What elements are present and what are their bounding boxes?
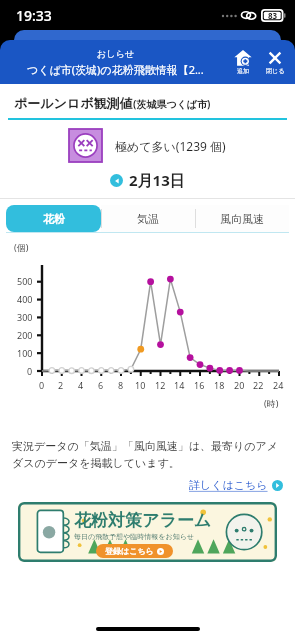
button[interactable]: 詳しくはこちら bbox=[12, 478, 283, 492]
staticText: 100 bbox=[17, 347, 33, 359]
staticText: おしらせ bbox=[97, 48, 134, 59]
staticText: (時) bbox=[264, 397, 279, 409]
staticText: 8 bbox=[118, 379, 124, 391]
staticText: つくば市(茨城)の花粉飛散情報【2... bbox=[27, 62, 204, 77]
staticText: 12 bbox=[155, 379, 166, 391]
staticText: 400 bbox=[17, 293, 33, 305]
staticText: 19:33 bbox=[16, 6, 52, 25]
button[interactable]: 花粉対策アラーム 登録はこちら bbox=[18, 502, 277, 562]
staticText: 花粉 bbox=[43, 212, 65, 226]
button[interactable]: 閉じる bbox=[259, 49, 291, 75]
button[interactable]: 追加 bbox=[227, 49, 259, 75]
staticText: 登録はこちら bbox=[105, 546, 154, 556]
staticText: 14 bbox=[174, 379, 185, 391]
staticText: 10 bbox=[135, 379, 146, 391]
button[interactable]: 気温 bbox=[101, 205, 195, 232]
staticText: 200 bbox=[17, 329, 33, 341]
staticText: 実況データの「気温」「風向風速」は、最寄りのアメダスのデータを掲載しています。 bbox=[12, 439, 283, 470]
staticText: 風向風速 bbox=[220, 212, 264, 226]
staticText: 毎日の飛散予想や臨時情報をお知らせ bbox=[74, 532, 194, 541]
staticText: 22 bbox=[253, 379, 264, 391]
staticText: 極めて多い(1239 個) bbox=[115, 138, 226, 154]
staticText: 詳しくはこちら bbox=[189, 478, 268, 492]
button[interactable]: 前の日 bbox=[110, 174, 123, 187]
staticText: 2月13日 bbox=[129, 170, 185, 190]
staticText: 花粉対策アラーム bbox=[74, 510, 212, 531]
staticText: 20 bbox=[234, 379, 245, 391]
staticText: 気温 bbox=[137, 212, 159, 226]
staticText: 300 bbox=[17, 311, 33, 323]
staticText: 18 bbox=[214, 379, 225, 391]
staticText: 0 bbox=[39, 379, 45, 391]
staticText: (茨城県つくば市) bbox=[133, 97, 211, 111]
staticText: 24 bbox=[273, 379, 284, 391]
button[interactable]: 登録はこちら bbox=[96, 544, 173, 558]
staticText: 6 bbox=[98, 379, 104, 391]
staticText: 0 bbox=[27, 365, 33, 377]
staticText: ポールンロボ観測値 bbox=[14, 95, 133, 111]
button[interactable]: おしらせ bbox=[0, 40, 295, 84]
staticText: 閉じる bbox=[266, 67, 285, 75]
staticText: 16 bbox=[194, 379, 205, 391]
button[interactable]: 花粉 bbox=[6, 205, 101, 232]
staticText: 83 bbox=[268, 10, 278, 21]
staticText: 2 bbox=[58, 379, 64, 391]
staticText: 追加 bbox=[237, 67, 249, 75]
staticText: (個) bbox=[14, 241, 29, 253]
staticText: 4 bbox=[78, 379, 84, 391]
staticText: 500 bbox=[17, 275, 33, 287]
button[interactable]: 風向風速 bbox=[195, 205, 289, 232]
